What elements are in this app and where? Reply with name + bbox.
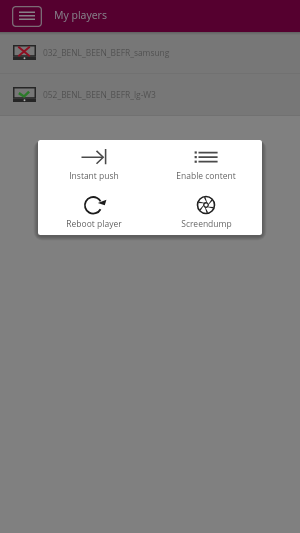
staticText: My players xyxy=(54,8,107,22)
staticText: 032_BENL_BEEN_BEFR_samsung xyxy=(43,47,170,58)
button[interactable]: Screendump xyxy=(150,188,262,235)
staticText: Instant push xyxy=(69,170,119,182)
button[interactable]: Instant push xyxy=(38,140,150,188)
button[interactable]: Open navigation drawer xyxy=(12,6,42,27)
staticText: Screendump xyxy=(181,218,232,230)
button[interactable]: Enable content xyxy=(150,140,262,188)
button[interactable]: Reboot player xyxy=(38,188,150,235)
staticText: 052_BENL_BEEN_BEFR_lg-W3 xyxy=(43,89,156,100)
button[interactable]: 032_BENL_BEEN_BEFR_samsung xyxy=(0,32,300,73)
staticText: Enable content xyxy=(176,170,236,182)
staticText: Reboot player xyxy=(66,218,122,230)
button[interactable]: 052_BENL_BEEN_BEFR_lg-W3 xyxy=(0,74,300,115)
